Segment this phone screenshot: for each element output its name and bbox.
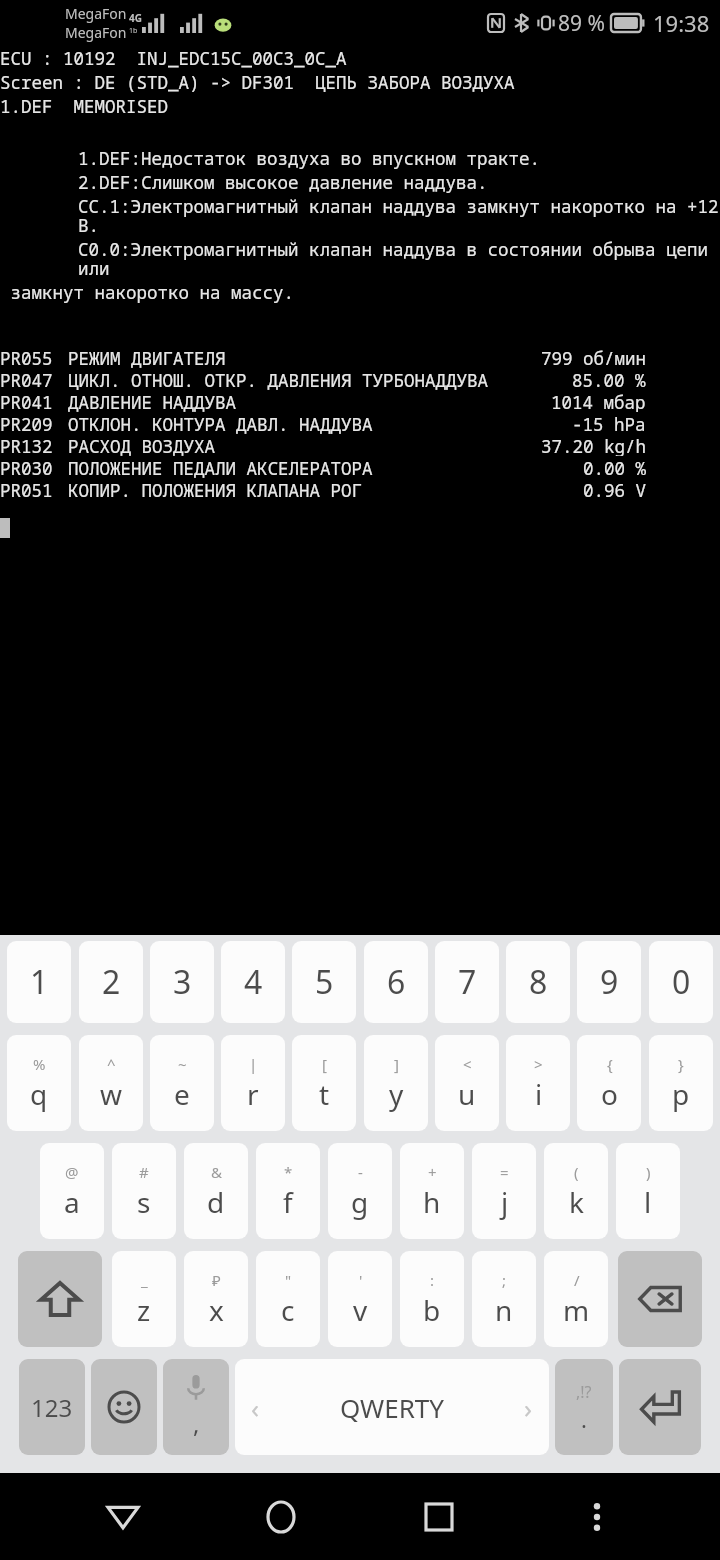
button[interactable]: ,!? xyxy=(555,1359,613,1455)
button[interactable]: & xyxy=(184,1143,248,1239)
staticText: 1014 мбар xyxy=(551,390,646,412)
staticText: 2 xyxy=(102,960,121,1004)
staticText: -15 hPa xyxy=(572,412,646,434)
staticText: PR047 xyxy=(0,368,53,390)
button[interactable]: ~ xyxy=(150,1035,214,1131)
staticText: : xyxy=(430,1270,435,1290)
button[interactable]: - xyxy=(328,1143,392,1239)
staticText: MegaFon xyxy=(65,23,127,42)
button[interactable]: _ xyxy=(112,1251,176,1347)
staticText: r xyxy=(247,1075,259,1113)
button[interactable]: * xyxy=(256,1143,320,1239)
button[interactable]: [ xyxy=(292,1035,356,1131)
staticText: 2.DEF:Слишком высокое давление наддува. xyxy=(78,170,488,194)
button[interactable]: Recents xyxy=(404,1482,474,1552)
button[interactable]: 5 xyxy=(292,941,356,1023)
button[interactable]: > xyxy=(506,1035,570,1131)
button[interactable]: 0 xyxy=(649,941,713,1023)
staticText: a xyxy=(64,1183,80,1221)
staticText: C0.0:Электромагнитный клапан наддува в с… xyxy=(78,237,720,280)
staticText: PR051 xyxy=(0,478,53,500)
staticText: e xyxy=(174,1075,190,1113)
staticText: { xyxy=(607,1054,613,1074)
button[interactable]: Back xyxy=(88,1482,158,1552)
button[interactable]: @ xyxy=(40,1143,104,1239)
button[interactable]: Voice input and comma xyxy=(163,1359,229,1455)
button[interactable]: ' xyxy=(328,1251,392,1347)
staticText: ' xyxy=(359,1270,363,1290)
staticText: u xyxy=(458,1075,476,1113)
button[interactable]: = xyxy=(472,1143,536,1239)
button[interactable]: 7 xyxy=(435,941,499,1023)
staticText: m xyxy=(563,1291,590,1329)
staticText: o xyxy=(601,1075,618,1113)
staticText: ОТКЛОН. КОНТУРА ДАВЛ. НАДДУВА xyxy=(68,412,373,434)
button[interactable]: % xyxy=(7,1035,71,1131)
button[interactable]: 3 xyxy=(150,941,214,1023)
staticText: z xyxy=(137,1291,151,1329)
staticText: 89 % xyxy=(558,9,605,38)
staticText: 799 об/мин xyxy=(541,346,646,368)
button[interactable]: " xyxy=(256,1251,320,1347)
staticText: ~ xyxy=(178,1054,187,1074)
staticText: 0.00 % xyxy=(583,456,646,478)
button[interactable]: More options xyxy=(562,1482,632,1552)
staticText: ; xyxy=(502,1270,507,1290)
button[interactable]: Backspace xyxy=(618,1251,702,1347)
staticText: x xyxy=(209,1291,224,1329)
staticText: 85.00 % xyxy=(572,368,646,390)
button[interactable]: + xyxy=(400,1143,464,1239)
staticText: | xyxy=(249,1054,258,1074)
staticText: ECU : 10192 INJ_EDC15C_00C3_0C_A xyxy=(0,46,347,70)
button[interactable]: / xyxy=(544,1251,608,1347)
button[interactable]: { xyxy=(577,1035,641,1131)
staticText: [ xyxy=(322,1054,327,1074)
button[interactable]: Enter xyxy=(619,1359,701,1455)
button[interactable]: 123 xyxy=(19,1359,85,1455)
button[interactable]: } xyxy=(649,1035,713,1131)
button[interactable]: < xyxy=(435,1035,499,1131)
staticText: 1 xyxy=(30,960,49,1004)
staticText: 0.96 V xyxy=(583,478,646,500)
button[interactable]: ‹ xyxy=(235,1359,549,1455)
staticText: & xyxy=(211,1162,222,1182)
staticText: j xyxy=(501,1183,509,1221)
staticText: > xyxy=(534,1054,543,1074)
button[interactable]: 6 xyxy=(364,941,428,1023)
button[interactable]: Home xyxy=(246,1482,316,1552)
button[interactable]: ( xyxy=(544,1143,608,1239)
staticText: PR055 xyxy=(0,346,53,368)
button[interactable]: Emoji xyxy=(91,1359,157,1455)
staticText: . xyxy=(581,1404,587,1434)
staticText: MegaFon xyxy=(65,4,127,23)
button[interactable]: # xyxy=(112,1143,176,1239)
staticText: QWERTY xyxy=(340,1390,445,1425)
staticText: ,!? xyxy=(576,1381,592,1403)
staticText: t xyxy=(319,1075,330,1113)
button[interactable]: ] xyxy=(364,1035,428,1131)
staticText: b xyxy=(423,1291,441,1329)
button[interactable]: 2 xyxy=(79,941,143,1023)
staticText: w xyxy=(100,1075,123,1113)
button[interactable]: ^ xyxy=(79,1035,143,1131)
button[interactable]: 4 xyxy=(221,941,285,1023)
button[interactable]: | xyxy=(221,1035,285,1131)
staticText: c xyxy=(281,1291,295,1329)
button[interactable]: 8 xyxy=(506,941,570,1023)
button[interactable]: Shift xyxy=(18,1251,102,1347)
button[interactable]: ₽ xyxy=(184,1251,248,1347)
staticText: v xyxy=(353,1291,368,1329)
staticText: РАСХОД ВОЗДУХА xyxy=(68,434,215,456)
staticText: ) xyxy=(646,1162,651,1182)
staticText: 8 xyxy=(529,960,548,1004)
button[interactable]: : xyxy=(400,1251,464,1347)
button[interactable]: 1 xyxy=(7,941,71,1023)
button[interactable]: 9 xyxy=(577,941,641,1023)
staticText: 19:38 xyxy=(653,8,710,38)
staticText: d xyxy=(207,1183,225,1221)
staticText: 9 xyxy=(600,960,619,1004)
button[interactable]: ; xyxy=(472,1251,536,1347)
staticText: / xyxy=(574,1270,580,1290)
button[interactable]: ) xyxy=(616,1143,680,1239)
staticText: 4 xyxy=(244,960,263,1004)
